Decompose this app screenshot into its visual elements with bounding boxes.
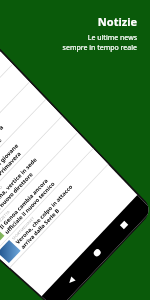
staticText: SPORTMEDIASET [11,216,35,241]
staticText: Fiorentina, vertice in sede [0,156,39,215]
staticText: gennaio: l'Empoli apre [0,136,4,189]
button[interactable]: CORRIERE [0,100,62,223]
button[interactable]: Recents [120,221,128,229]
button[interactable]: SPORTMEDIASET [0,149,108,268]
button[interactable]: SKY SPORT [0,82,46,207]
staticText: talento della Primavera [0,150,23,205]
staticText: per il nuovo direttore [0,171,35,220]
button[interactable]: GAZZETTA [0,133,93,253]
staticText: Il Torino punta il giovane [0,142,20,200]
staticText: GAZZETTA [0,209,11,226]
staticText: sempre in tempo reale [62,43,137,53]
staticText: Verona, che colpo in attacco [14,183,74,246]
button[interactable]: CALCIOMERCATO [0,116,78,238]
staticText: ufficiale il nuovo tecnico [3,180,56,235]
staticText: Atalanta sogna Lo Celso a [0,124,5,184]
button[interactable]: Back [66,275,77,286]
staticText: Il Genoa cambia ancora [0,177,50,231]
staticText: arriva dalla Serie B [19,207,61,250]
button[interactable]: SPORTMEDIASET [0,47,13,175]
staticText: Le ultime news [87,33,137,43]
button[interactable]: TUTTOSPORT [0,65,30,191]
staticText: Notizie [97,14,137,29]
button[interactable]: Home [92,248,102,258]
staticText: CALCIOMERCATO [0,184,3,210]
